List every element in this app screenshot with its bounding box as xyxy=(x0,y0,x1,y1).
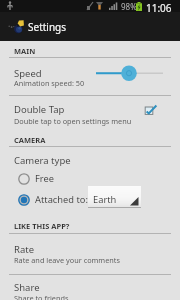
staticText: Earth xyxy=(93,193,117,206)
staticText: Share to friends xyxy=(14,293,69,300)
button[interactable]: Earth xyxy=(88,186,141,208)
button[interactable]: Double Tap xyxy=(0,96,180,133)
staticText: Rate xyxy=(14,243,35,256)
staticText: CAMERA xyxy=(14,135,46,145)
staticText: Free xyxy=(35,172,54,185)
staticText: Share xyxy=(14,281,40,294)
staticText: Speed xyxy=(14,67,42,80)
button[interactable]: Share xyxy=(0,275,180,300)
button[interactable]: Rate xyxy=(0,234,180,274)
staticText: Attached to: xyxy=(35,193,88,206)
staticText: LIKE THIS APP? xyxy=(14,221,70,231)
staticText: Double tap to open settings menu xyxy=(14,116,132,126)
button[interactable]: Free xyxy=(0,170,180,187)
staticText: Rate and leave your comments xyxy=(14,255,120,265)
staticText: Settings xyxy=(28,20,67,34)
staticText: Camera type xyxy=(14,154,71,167)
staticText: 11:06 xyxy=(146,1,172,13)
staticText: 98% xyxy=(121,1,137,12)
staticText: MAIN xyxy=(14,46,36,56)
button[interactable]: Speed xyxy=(0,58,180,95)
staticText: Double Tap xyxy=(14,103,65,116)
button[interactable]: Attached to: xyxy=(0,190,180,209)
staticText: Animation speed: 50 xyxy=(14,78,85,88)
button[interactable]: App icon xyxy=(4,14,24,34)
